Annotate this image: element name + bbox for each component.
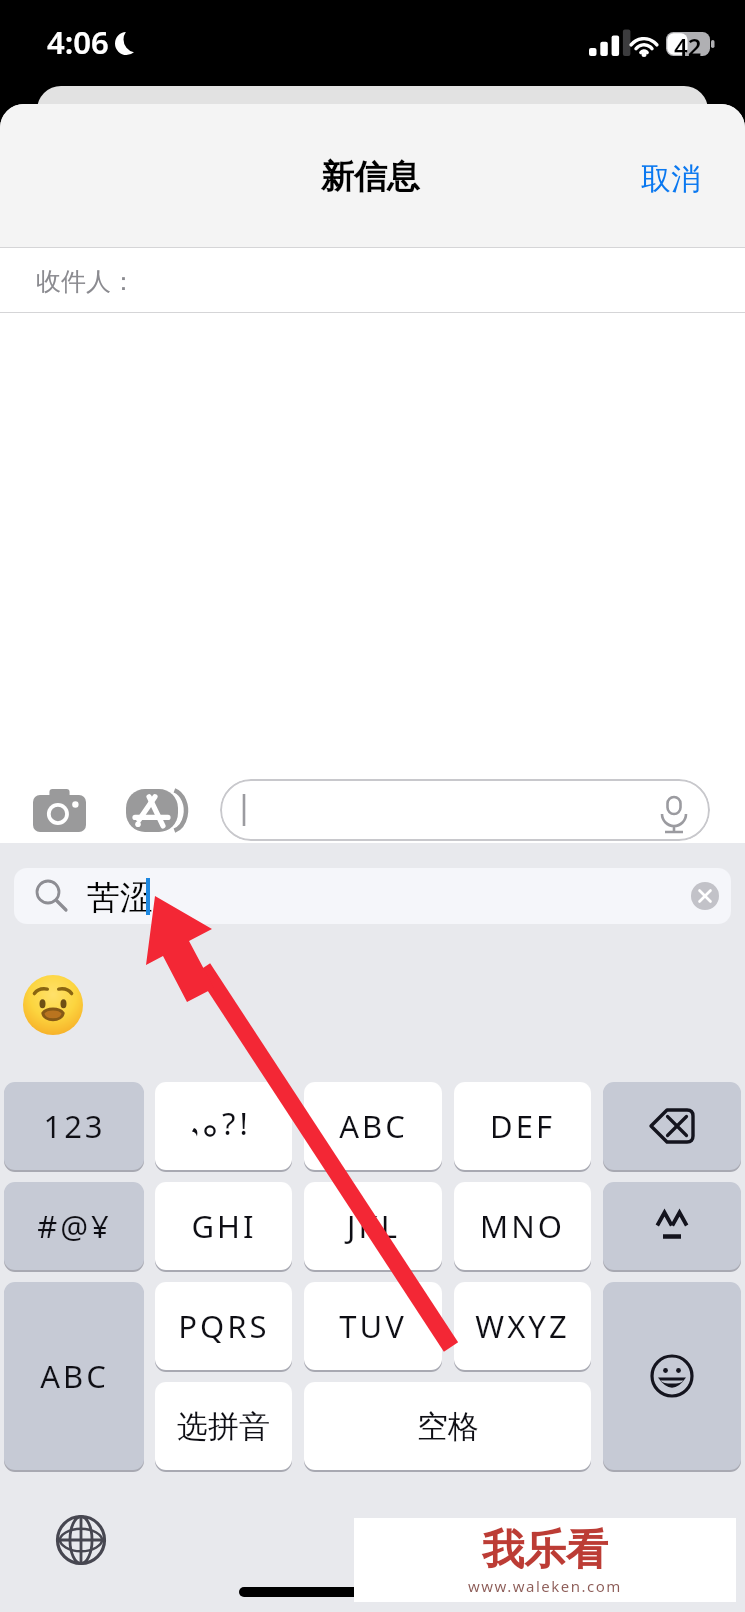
staticText: PQRS <box>178 1305 270 1347</box>
button[interactable]: DEF <box>454 1082 591 1170</box>
staticText: 我乐看 <box>482 1524 608 1577</box>
staticText: 新信息 <box>321 156 420 198</box>
staticText: 123 <box>43 1105 106 1147</box>
button[interactable]: JKL <box>304 1182 442 1270</box>
staticText: www.waleken.com <box>468 1576 622 1596</box>
staticText: MNO <box>480 1205 565 1247</box>
button[interactable]: Backspace <box>603 1082 741 1170</box>
button[interactable]: WXYZ <box>454 1282 591 1370</box>
staticText: DEF <box>490 1105 555 1147</box>
button[interactable]: MNO <box>454 1182 591 1270</box>
button[interactable]: TUV <box>304 1282 442 1370</box>
staticText: TUV <box>339 1305 407 1347</box>
staticText: ABC <box>339 1105 408 1147</box>
button[interactable]: 苦涩 <box>14 868 731 924</box>
button[interactable] <box>220 779 710 841</box>
button[interactable]: ABC <box>304 1082 442 1170</box>
staticText: 空格 <box>417 1407 479 1446</box>
staticText: 42 <box>674 30 702 63</box>
staticText: 苦涩 <box>87 877 153 919</box>
button[interactable]: #@¥ <box>4 1182 144 1270</box>
button[interactable]: 收件人： <box>0 248 745 313</box>
staticText: #@¥ <box>37 1205 112 1247</box>
button[interactable]: Kaomoji <box>603 1182 741 1270</box>
button[interactable]: iMessage apps <box>126 789 190 832</box>
button[interactable]: ABC <box>4 1282 144 1470</box>
button[interactable]: 空格 <box>304 1382 591 1470</box>
staticText: GHI <box>191 1205 257 1247</box>
button[interactable]: ?! <box>155 1082 292 1170</box>
staticText: ABC <box>40 1355 109 1397</box>
staticText: ?! <box>222 1102 252 1136</box>
button[interactable]: GHI <box>155 1182 292 1270</box>
button[interactable]: 123 <box>4 1082 144 1170</box>
button[interactable]: Emoji <box>603 1282 741 1470</box>
staticText: 选拼音 <box>177 1407 270 1446</box>
button[interactable]: Anguished face <box>21 973 85 1037</box>
button[interactable]: Camera <box>33 789 86 832</box>
staticText: 取消 <box>641 160 701 198</box>
button[interactable]: Clear text <box>690 881 720 911</box>
staticText: JKL <box>347 1205 400 1247</box>
staticText: 4:06 <box>47 21 109 63</box>
button[interactable]: PQRS <box>155 1282 292 1370</box>
button[interactable]: 选拼音 <box>155 1382 292 1470</box>
button[interactable]: Switch keyboard <box>49 1508 113 1572</box>
staticText: WXYZ <box>475 1305 570 1347</box>
staticText: 收件人： <box>36 266 136 297</box>
button[interactable]: 取消 <box>617 146 745 212</box>
